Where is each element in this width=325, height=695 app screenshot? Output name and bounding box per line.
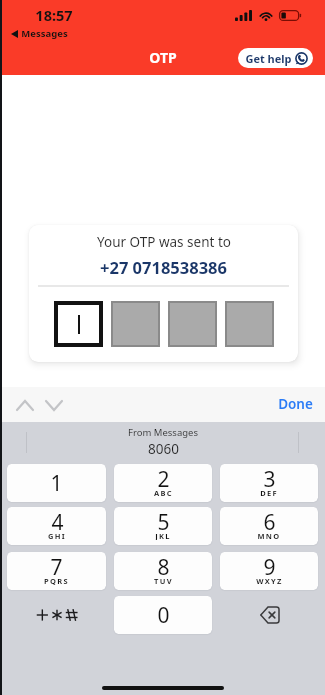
staticText: +27 0718538386 xyxy=(100,256,227,278)
button[interactable]: 6 xyxy=(220,507,318,545)
button[interactable] xyxy=(111,301,160,347)
staticText: 6 xyxy=(263,508,276,537)
staticText: OTP xyxy=(149,48,177,67)
button[interactable]: 9 xyxy=(220,552,318,590)
button[interactable]: Next field xyxy=(41,392,67,418)
staticText: 5 xyxy=(157,508,170,537)
button[interactable]: 1 xyxy=(7,464,106,502)
staticText: 8060 xyxy=(148,440,179,458)
button[interactable]: Done xyxy=(264,390,325,420)
button[interactable]: 7 xyxy=(7,552,106,590)
button[interactable]: 2 xyxy=(114,464,212,502)
staticText: Get help xyxy=(245,51,292,66)
staticText: TUV xyxy=(154,576,173,585)
button[interactable]: 4 xyxy=(7,507,106,545)
staticText: Done xyxy=(278,395,313,413)
button[interactable] xyxy=(54,301,103,347)
button[interactable]: Symbols xyxy=(7,596,106,634)
button[interactable]: 8 xyxy=(114,552,212,590)
staticText: ABC xyxy=(154,488,173,497)
staticText: Messages xyxy=(21,27,68,40)
button[interactable]: Get help xyxy=(238,48,313,68)
staticText: 0 xyxy=(157,601,170,630)
staticText: 2 xyxy=(157,465,170,494)
button[interactable]: Previous field xyxy=(12,392,38,418)
staticText: 1 xyxy=(50,469,63,498)
button[interactable]: Backspace xyxy=(220,596,318,634)
staticText: 18:57 xyxy=(35,5,73,25)
staticText: JKL xyxy=(155,531,171,540)
staticText: Your OTP was sent to xyxy=(97,233,231,251)
staticText: GHI xyxy=(48,531,66,540)
staticText: 9 xyxy=(263,553,276,582)
staticText: WXYZ xyxy=(256,576,283,585)
staticText: From Messages xyxy=(128,426,198,439)
staticText: 8 xyxy=(157,553,170,582)
staticText: 7 xyxy=(50,553,63,582)
staticText: 3 xyxy=(263,465,276,494)
button[interactable] xyxy=(168,301,217,347)
staticText: MNO xyxy=(257,531,281,540)
staticText: PQRS xyxy=(44,576,69,585)
button[interactable]: 0 xyxy=(114,596,212,634)
staticText: DEF xyxy=(260,488,278,497)
staticText: 4 xyxy=(51,508,64,537)
button[interactable] xyxy=(225,301,274,347)
button[interactable]: 3 xyxy=(220,464,318,502)
button[interactable]: 5 xyxy=(114,507,212,545)
